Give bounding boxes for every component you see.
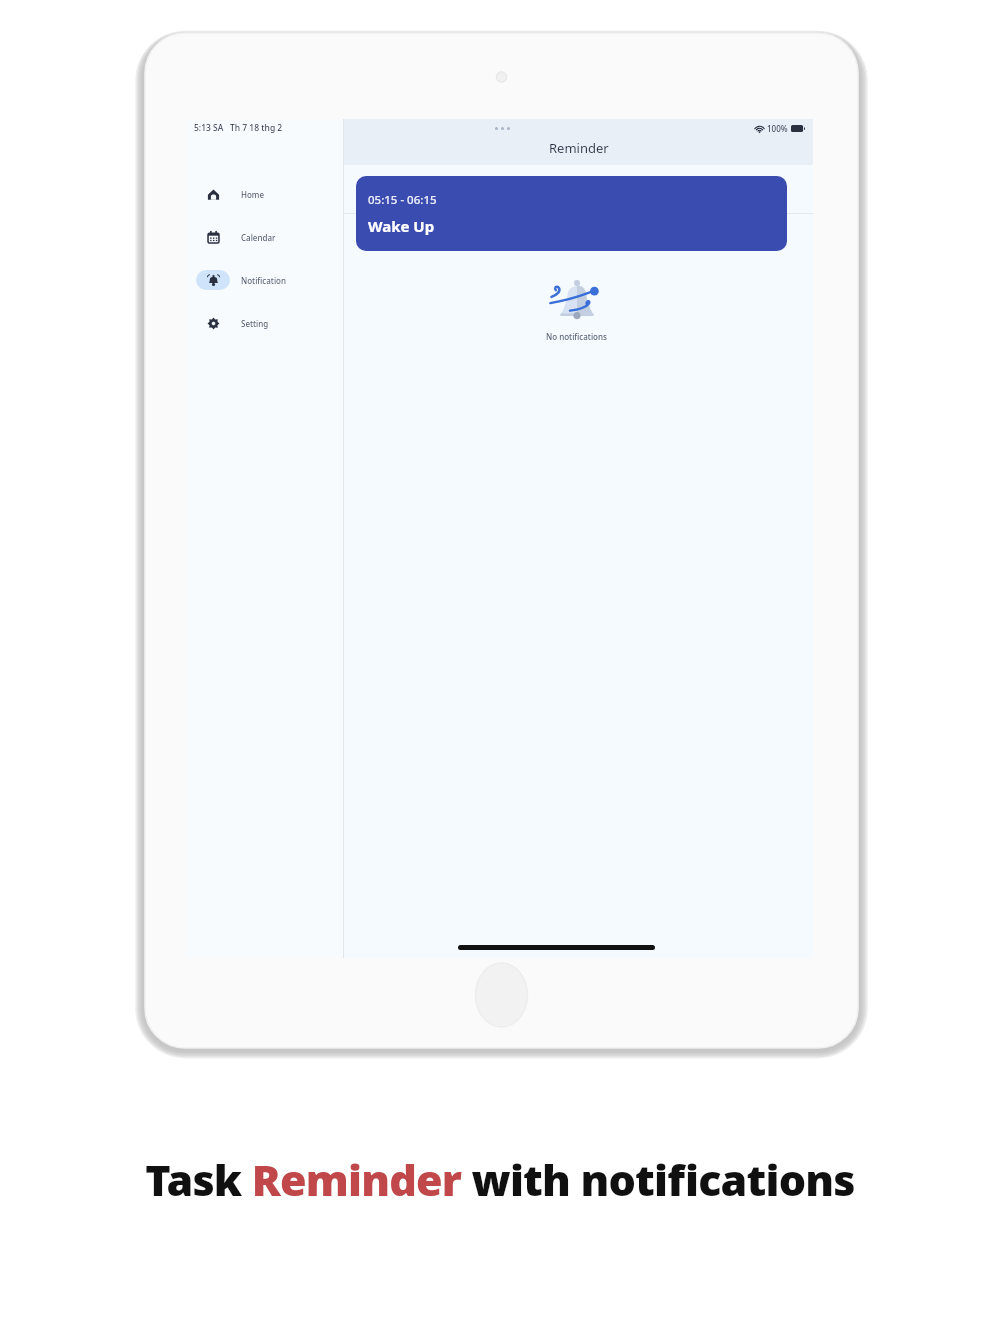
staticText: Setting [241,318,269,329]
other: Setting [207,317,220,330]
button[interactable]: 05:15 - 06:15 [356,176,787,251]
other: Home [207,188,220,201]
button[interactable]: Notification [196,268,335,292]
staticText: Notification [241,275,286,286]
staticText: 05:15 - 06:15 [368,192,437,208]
staticText: 5:13 SA Th 7 18 thg 2 [194,122,283,134]
button[interactable]: Setting [196,311,335,335]
button[interactable]: Calendar [196,225,335,249]
staticText: 100% [767,123,788,134]
staticText: Task Reminder with notifications [0,1150,1000,1209]
staticText: No notifications [546,331,607,342]
other: Notification [207,274,220,287]
other: Calendar [207,231,220,244]
staticText: Wake Up [368,216,435,236]
staticText: Calendar [241,232,276,243]
staticText: Home [241,189,265,200]
button[interactable]: Home [196,182,335,206]
staticText: Reminder [549,139,609,157]
